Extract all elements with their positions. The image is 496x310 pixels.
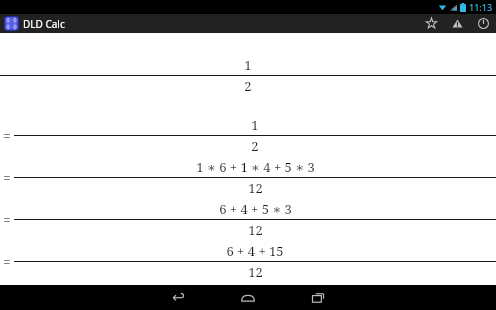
button[interactable]: Warnings — [444, 14, 470, 33]
button[interactable]: DLD Calc — [3, 15, 65, 32]
staticText: 12 — [248, 221, 263, 239]
staticText: = — [3, 169, 11, 187]
staticText: 1 — [251, 116, 259, 134]
staticText: = — [3, 127, 11, 145]
staticText: 2 — [251, 137, 259, 155]
button[interactable]: Favorite — [418, 14, 444, 33]
staticText: = — [3, 253, 11, 271]
staticText: DLD Calc — [23, 17, 65, 31]
staticText: 6 + 4 + 5 ∗ 3 — [219, 200, 292, 218]
staticText: 1 — [244, 56, 252, 74]
staticText: 6 + 4 + 15 — [226, 242, 284, 260]
button[interactable]: Info — [470, 14, 496, 33]
staticText: 12 — [248, 179, 263, 197]
staticText: 12 — [248, 263, 263, 281]
staticText: 11:13 — [469, 1, 493, 13]
button[interactable]: Recent apps — [283, 285, 353, 310]
button[interactable]: Back — [143, 285, 213, 310]
staticText: = — [3, 211, 11, 229]
button[interactable]: Home — [213, 285, 283, 310]
staticText: 1 ∗ 6 + 1 ∗ 4 + 5 ∗ 3 — [196, 158, 315, 176]
staticText: 2 — [244, 77, 252, 95]
